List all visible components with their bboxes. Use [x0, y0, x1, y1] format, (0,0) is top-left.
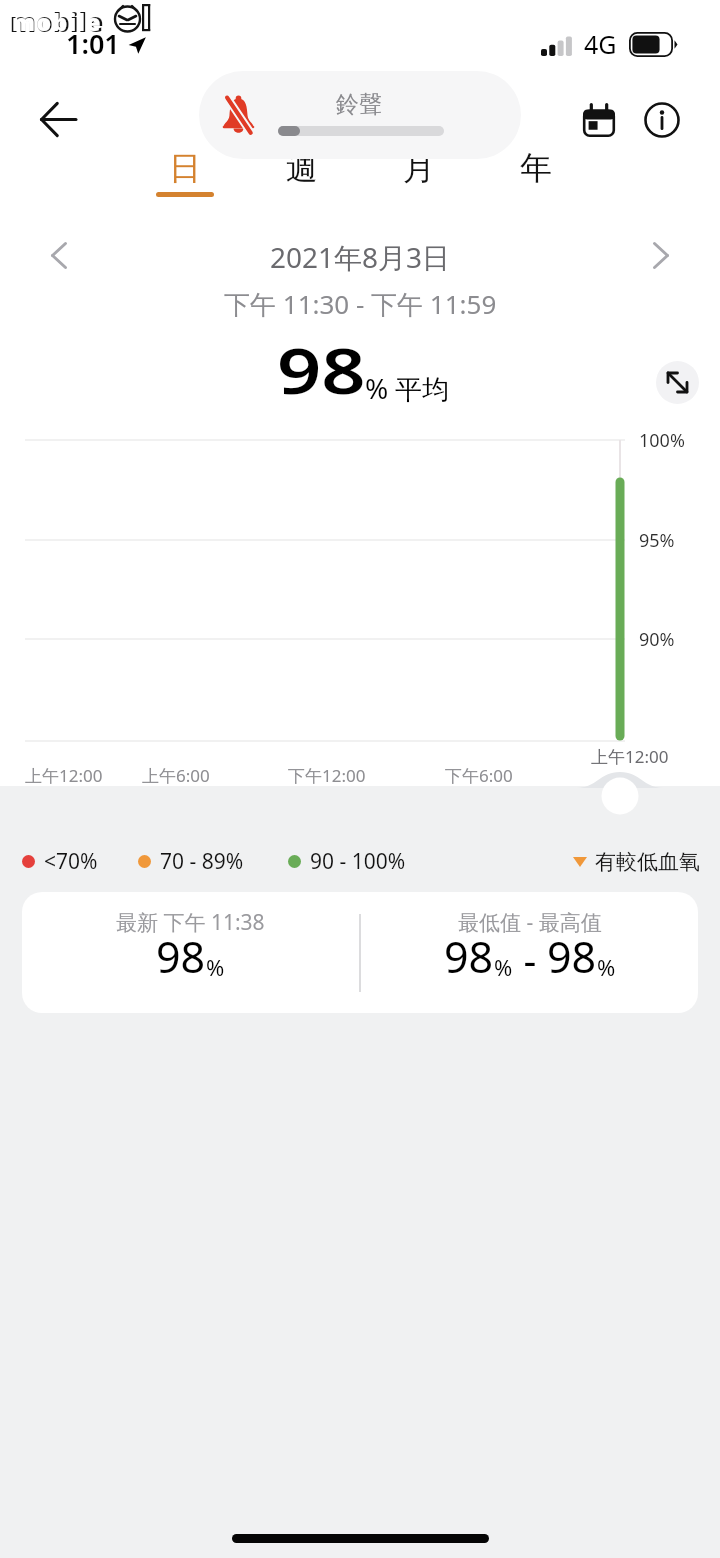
button[interactable]: 年	[477, 148, 594, 200]
staticText: 95%	[639, 528, 675, 553]
staticText: 90%	[639, 627, 675, 652]
button[interactable]: 月	[360, 148, 477, 200]
button[interactable]: Previous day	[28, 224, 90, 286]
staticText: 週	[286, 148, 318, 188]
staticText: %	[365, 369, 389, 407]
staticText: %	[206, 952, 225, 982]
button[interactable]: Next day	[630, 224, 692, 286]
staticText: 100%	[639, 428, 685, 453]
staticText: 下午6:00	[445, 764, 513, 787]
staticText: 70 - 89%	[160, 847, 244, 876]
staticText: 98	[156, 927, 206, 986]
staticText: <70%	[44, 847, 98, 876]
staticText: 月	[403, 148, 435, 188]
button[interactable]: 週	[243, 148, 360, 200]
button[interactable]: Information	[628, 86, 696, 154]
staticText: mobile	[10, 4, 104, 39]
staticText: 上午6:00	[142, 764, 210, 787]
staticText: 下午12:00	[288, 764, 366, 787]
staticText: 上午12:00	[591, 745, 669, 768]
button[interactable]: 90 - 100%	[288, 847, 406, 876]
staticText: 4G	[584, 27, 617, 61]
staticText: 1:01	[66, 25, 120, 62]
staticText: %	[494, 952, 513, 982]
staticText: 90 - 100%	[310, 847, 406, 876]
button[interactable]: 日	[126, 148, 243, 200]
button[interactable]: <70%	[22, 847, 98, 876]
staticText: mobile	[12, 6, 102, 37]
staticText: 有較低血氧	[595, 849, 700, 875]
staticText: 鈴聲	[336, 90, 382, 119]
button[interactable]: 70 - 89%	[138, 847, 244, 876]
staticText: 98	[547, 927, 597, 986]
staticText: -	[513, 932, 547, 986]
staticText: 上午12:00	[25, 764, 103, 787]
staticText: 98	[444, 927, 494, 986]
staticText: 下午 11:30 - 下午 11:59	[224, 286, 497, 322]
button[interactable]: Back	[22, 83, 94, 155]
button[interactable]: 最新 下午 11:38	[22, 892, 698, 1013]
staticText: 最新 下午 11:38	[116, 908, 265, 937]
staticText: 2021年8月3日	[270, 238, 451, 276]
staticText: 日	[169, 148, 201, 188]
button[interactable]: Calendar	[565, 86, 633, 154]
staticText: 98	[277, 326, 366, 413]
staticText: %	[597, 952, 616, 982]
staticText: 最低值 - 最高值	[458, 908, 602, 937]
button[interactable]: Expand chart	[656, 361, 699, 404]
staticText: 年	[520, 148, 552, 188]
staticText: 平均	[395, 373, 449, 407]
